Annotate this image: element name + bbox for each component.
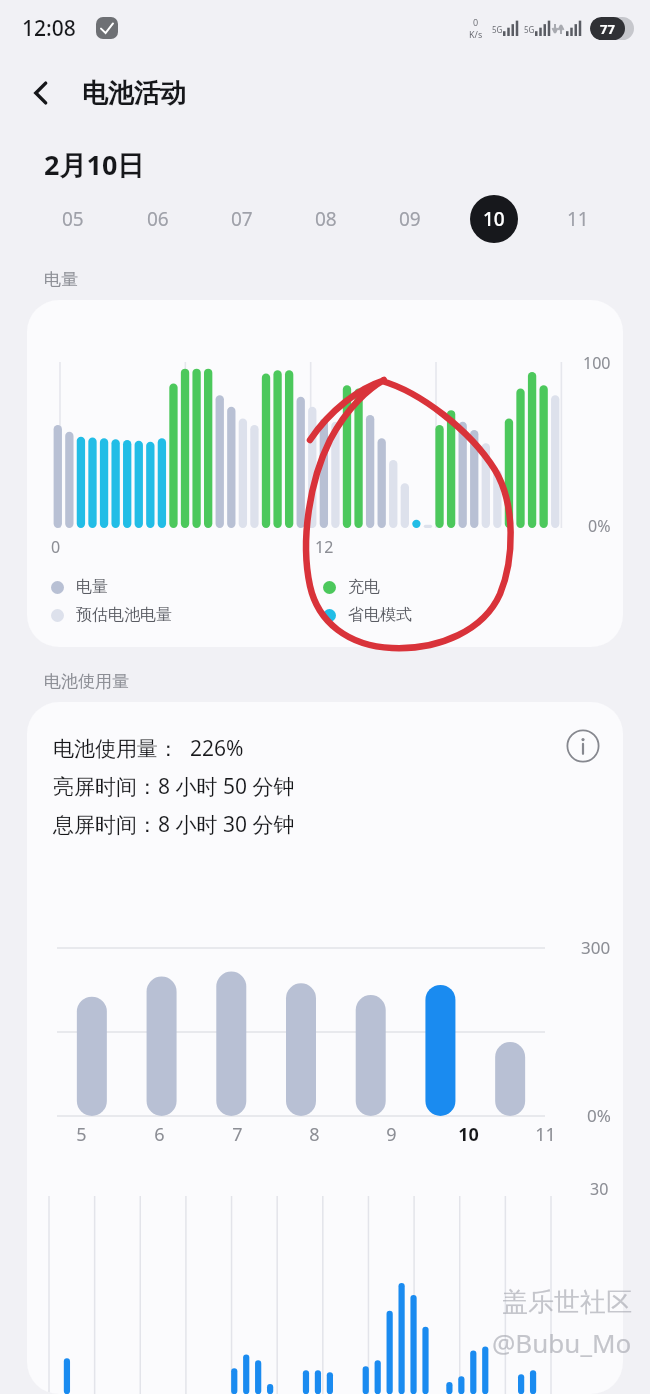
staticText: 0% (588, 515, 611, 537)
staticText: 0 (473, 16, 479, 28)
staticText: K/s (469, 28, 483, 40)
staticText: 盖乐世社区 (502, 1286, 632, 1319)
button[interactable]: Info (561, 724, 605, 768)
staticText: 12:08 (22, 14, 76, 43)
staticText: 息屏时间：8 小时 30 分钟 (53, 810, 295, 839)
button[interactable]: 100 (27, 300, 623, 647)
staticText: 电池活动 (82, 77, 186, 110)
staticText: 电量 (44, 269, 78, 290)
staticText: 11 (567, 206, 589, 232)
staticText: 电池使用量 (44, 671, 129, 692)
staticText: 05 (62, 206, 84, 232)
staticText: 6 (154, 1122, 165, 1147)
staticText: 77 (600, 20, 615, 38)
staticText: 0% (587, 1104, 611, 1127)
staticText: 30 (590, 1178, 609, 1200)
button[interactable]: 08 (284, 191, 368, 247)
staticText: 06 (147, 206, 169, 232)
staticText: 11 (535, 1122, 556, 1147)
staticText: 8 (309, 1122, 320, 1147)
button[interactable]: 11 (536, 191, 620, 247)
staticText: 5G (492, 24, 503, 35)
staticText: @Bubu_Mo (492, 1325, 632, 1360)
staticText: 电池使用量： 226% (53, 734, 244, 763)
staticText: 300 (581, 936, 611, 959)
staticText: 12 (315, 536, 334, 558)
staticText: 充电 (348, 577, 380, 597)
staticText: 9 (386, 1122, 397, 1147)
button[interactable]: 电池使用量： 226% (27, 702, 623, 1394)
staticText: 0 (51, 536, 61, 558)
staticText: 08 (315, 206, 337, 232)
staticText: 10 (483, 206, 505, 232)
staticText: 5 (76, 1122, 87, 1147)
staticText: 预估电池电量 (76, 605, 172, 625)
staticText: 100 (583, 352, 611, 374)
staticText: 7 (232, 1122, 243, 1147)
button[interactable]: 07 (200, 191, 284, 247)
button[interactable]: 06 (115, 191, 200, 247)
button[interactable]: 09 (368, 191, 452, 247)
staticText: 09 (399, 206, 421, 232)
staticText: 2月10日 (44, 146, 145, 183)
staticText: 10 (458, 1122, 479, 1147)
staticText: 5G (524, 24, 535, 35)
staticText: 07 (231, 206, 253, 232)
staticText: 电量 (76, 577, 108, 597)
staticText: 省电模式 (348, 605, 412, 625)
staticText: 亮屏时间：8 小时 50 分钟 (53, 772, 295, 801)
button[interactable]: Back (14, 66, 68, 120)
button[interactable]: 05 (30, 191, 115, 247)
button[interactable]: 10 (452, 191, 536, 247)
